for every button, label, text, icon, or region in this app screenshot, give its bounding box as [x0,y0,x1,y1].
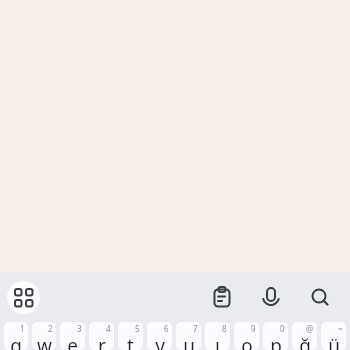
staticText: r [98,333,106,350]
button[interactable]: 7 [176,322,201,350]
staticText: 0 [280,323,285,334]
staticText: ı [215,333,220,350]
staticText: ğ [299,333,311,350]
button[interactable]: 3 [60,322,85,350]
button[interactable] [251,277,291,317]
button[interactable]: 0 [263,322,288,350]
staticText: 9 [251,323,256,334]
staticText: y [155,333,165,350]
staticText: t [127,333,134,350]
staticText: ü [328,333,340,350]
button[interactable]: 8 [205,322,230,350]
staticText: 5 [135,323,140,334]
button[interactable]: @ [292,322,317,350]
staticText: o [241,333,253,350]
staticText: 1 [20,323,25,334]
staticText: ~ [338,323,343,334]
button[interactable]: 6 [147,322,172,350]
button[interactable]: 9 [234,322,259,350]
staticText: w [37,333,52,350]
button[interactable]: 1 [4,322,28,350]
staticText: 6 [164,323,169,334]
staticText: 3 [77,323,82,334]
button[interactable] [202,277,242,317]
staticText: u [183,333,195,350]
button[interactable] [7,281,40,314]
button[interactable]: 2 [32,322,56,350]
staticText: q [10,333,22,350]
staticText: 2 [48,323,53,334]
staticText: e [67,333,78,350]
button[interactable] [300,277,340,317]
staticText: p [270,333,282,350]
button[interactable]: 4 [89,322,114,350]
staticText: 4 [106,323,111,334]
staticText: @ [306,323,314,334]
button[interactable]: 5 [118,322,143,350]
staticText: 7 [193,323,198,334]
staticText: 8 [222,323,227,334]
button[interactable]: ~ [321,322,346,350]
